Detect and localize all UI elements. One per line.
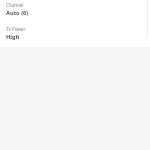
staticText: Auto (6) <box>6 9 29 17</box>
staticText: High <box>6 33 20 41</box>
staticText: Channel <box>6 2 24 8</box>
staticText: Tx Power <box>6 26 26 32</box>
button[interactable]: Tx Power <box>0 19 150 43</box>
button[interactable]: Channel <box>0 0 150 19</box>
